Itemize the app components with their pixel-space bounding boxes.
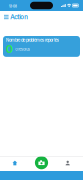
button[interactable]: Scanner bbox=[35, 156, 48, 169]
button[interactable]: Menu bbox=[0, 13, 10, 21]
button[interactable]: Action bbox=[10, 12, 28, 22]
staticText: Nombre de problèmes reportés bbox=[6, 38, 59, 43]
staticText: 0 bbox=[6, 43, 13, 56]
staticText: Action bbox=[10, 13, 28, 21]
button[interactable]: Accueil bbox=[7, 157, 22, 169]
staticText: 0 résolus bbox=[15, 47, 30, 52]
button[interactable]: Profil bbox=[60, 157, 75, 169]
staticText: 13:08 bbox=[9, 4, 17, 8]
